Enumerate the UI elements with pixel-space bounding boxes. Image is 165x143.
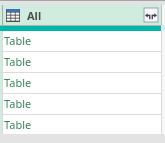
staticText: Table <box>4 75 32 90</box>
button[interactable]: All <box>0 5 161 25</box>
staticText: Table <box>4 33 32 48</box>
staticText: Table <box>4 96 32 111</box>
staticText: Table <box>4 54 32 69</box>
button[interactable]: Table <box>0 94 165 115</box>
button[interactable]: Expand all <box>144 8 158 22</box>
staticText: Table <box>4 117 32 132</box>
button[interactable]: Table <box>0 115 165 134</box>
staticText: All <box>27 8 42 23</box>
button[interactable]: Table <box>0 73 165 94</box>
button[interactable]: Table <box>0 31 165 52</box>
button[interactable]: Table <box>0 52 165 73</box>
